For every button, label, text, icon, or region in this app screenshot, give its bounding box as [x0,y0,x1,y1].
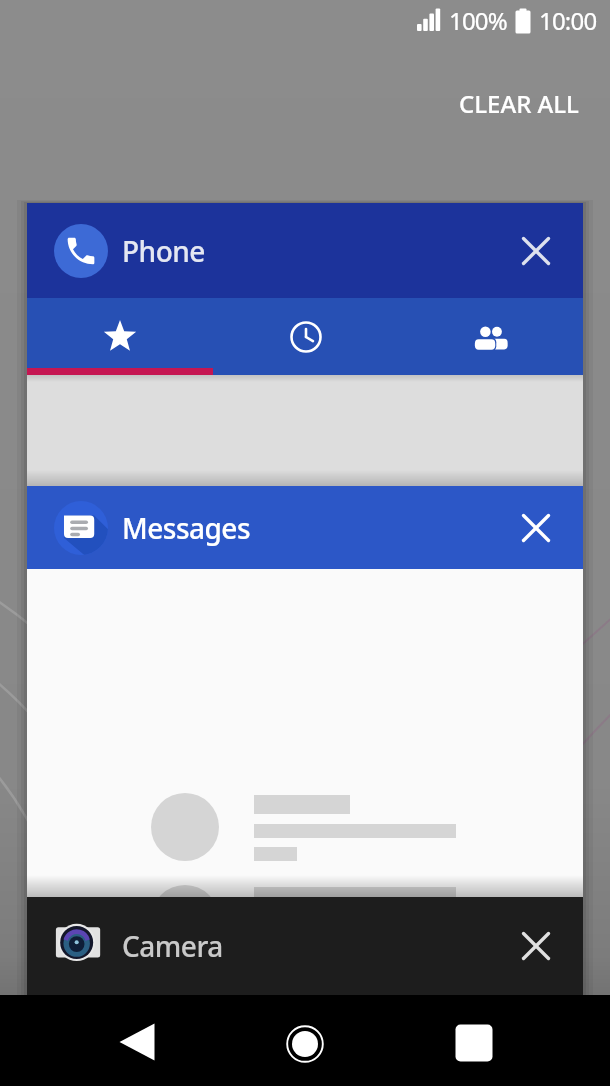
button[interactable] [439,1008,509,1078]
staticText: Phone [122,232,205,270]
button[interactable] [508,223,564,279]
staticText: 100% [449,4,507,37]
button[interactable] [213,298,398,375]
staticText: Messages [122,509,251,547]
button[interactable] [102,1007,172,1077]
button[interactable] [508,918,564,974]
button[interactable]: Camera [27,897,583,995]
staticText: Camera [122,927,223,965]
staticText: CLEAR ALL [459,87,579,120]
button[interactable] [27,298,213,375]
button[interactable] [270,1009,340,1079]
button[interactable]: CLEAR ALL [449,79,589,128]
button[interactable]: Phone [27,203,583,298]
button[interactable]: Messages [27,486,583,569]
button[interactable] [508,500,564,556]
staticText: 10:00 [539,4,597,37]
button[interactable] [398,298,583,375]
